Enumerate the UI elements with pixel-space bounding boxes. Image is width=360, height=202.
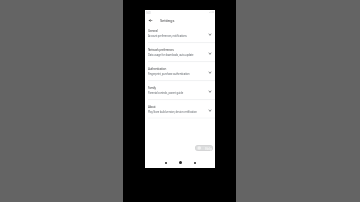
staticText: Network preferences (148, 48, 174, 52)
button[interactable]: Family (145, 81, 215, 100)
staticText: 9:41 (146, 11, 151, 15)
button[interactable]: About (145, 100, 215, 119)
button[interactable]: General (145, 24, 215, 43)
staticText: Parental controls, parent guide (148, 91, 184, 95)
button[interactable]: Home (179, 161, 182, 164)
button[interactable]: Back (164, 161, 167, 164)
button[interactable]: Authentication (145, 62, 215, 81)
staticText: About (148, 105, 156, 109)
button[interactable]: Help (195, 145, 213, 151)
staticText: Play Store build version, device certifi… (148, 110, 197, 114)
button[interactable]: Back (146, 16, 155, 25)
button[interactable]: Network preferences (145, 43, 215, 62)
staticText: Fingerprint, purchase authentication (148, 72, 190, 76)
staticText: Settings (160, 18, 175, 24)
staticText: Family (148, 86, 156, 90)
button[interactable]: Recent apps (193, 161, 196, 164)
staticText: Data usage for downloads, auto-update (148, 53, 194, 57)
staticText: Account preferences, notifications (148, 34, 187, 38)
staticText: General (148, 29, 158, 33)
staticText: Authentication (148, 67, 167, 71)
staticText: Help (205, 146, 212, 150)
